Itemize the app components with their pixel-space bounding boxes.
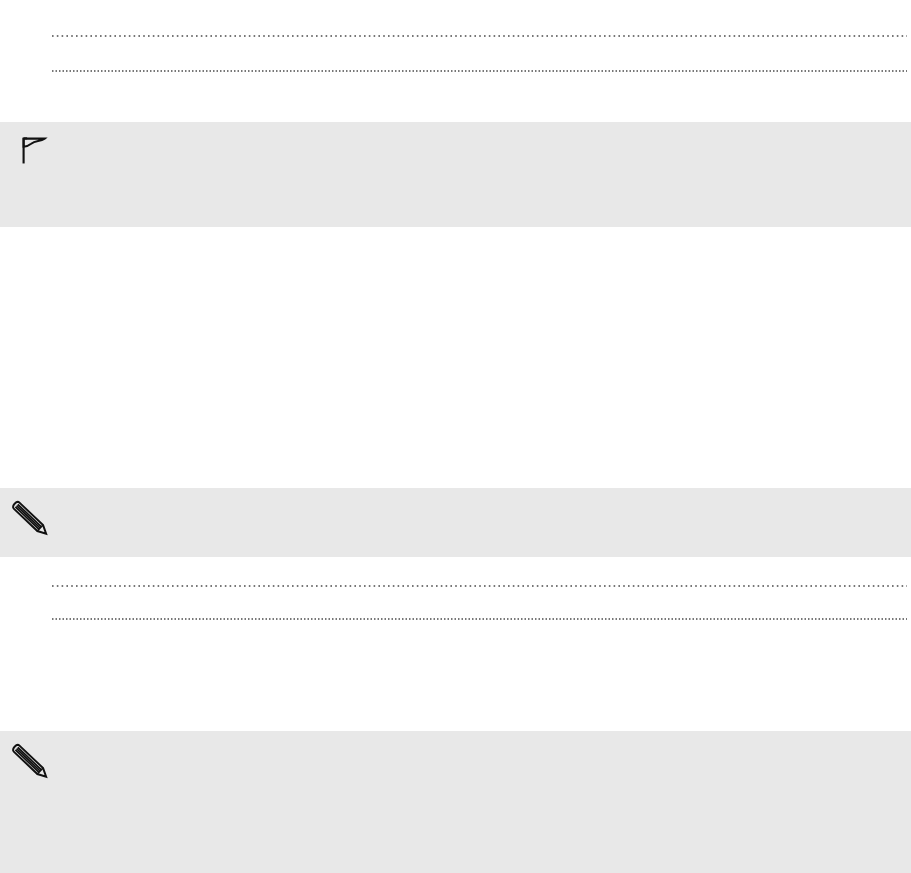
button[interactable]: Edit (0, 488, 911, 557)
button[interactable]: Flag (0, 122, 911, 227)
other: Edit (13, 745, 49, 781)
other: Edit (13, 502, 49, 538)
button[interactable]: Edit (0, 731, 911, 873)
other: Flag (19, 137, 46, 164)
